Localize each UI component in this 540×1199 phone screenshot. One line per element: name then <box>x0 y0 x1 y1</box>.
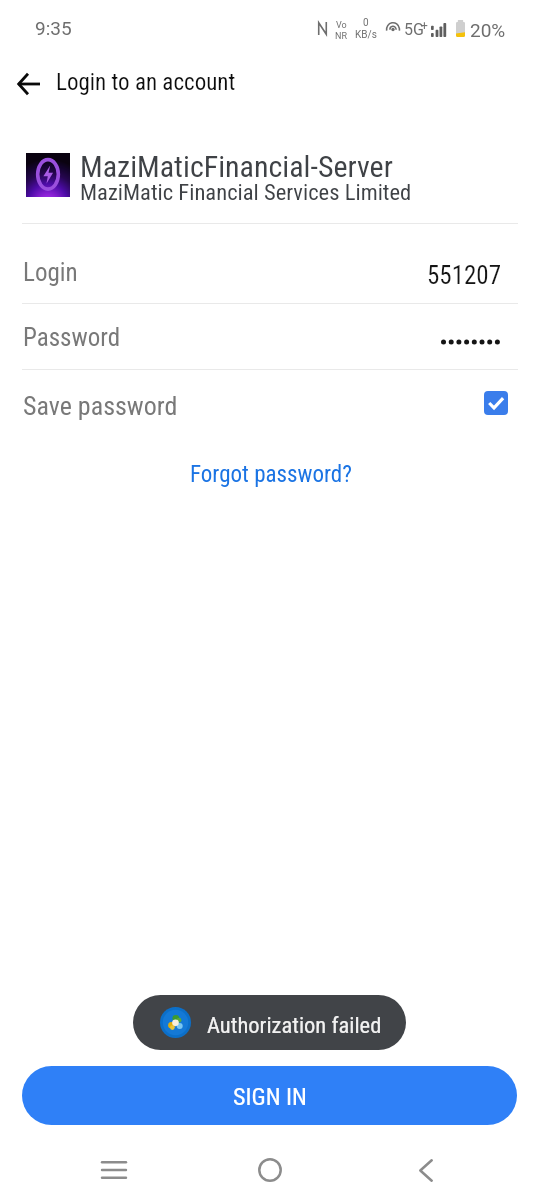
button[interactable]: Login <box>0 224 540 303</box>
button[interactable]: SIGN IN <box>22 1066 517 1125</box>
staticText: NR <box>335 31 347 42</box>
button[interactable]: Back <box>398 1142 454 1198</box>
staticText: 0 <box>363 17 369 29</box>
staticText: MaziMaticFinancial-Server <box>80 149 393 184</box>
staticText: 5G <box>404 20 424 39</box>
staticText: MaziMatic Financial Services Limited <box>80 179 412 205</box>
button[interactable]: Home <box>242 1142 298 1198</box>
button[interactable]: Forgot password? <box>176 454 366 495</box>
button[interactable]: Authorization failed <box>133 995 406 1050</box>
staticText: Login <box>23 258 78 287</box>
button[interactable]: Password <box>0 304 540 369</box>
staticText: Vo <box>336 20 347 31</box>
button[interactable]: Recent apps <box>86 1142 142 1198</box>
staticText: Save password <box>23 391 178 421</box>
staticText: 9:35 <box>35 17 72 39</box>
staticText: + <box>421 19 428 33</box>
staticText: Forgot password? <box>190 461 352 488</box>
staticText: SIGN IN <box>233 1083 307 1111</box>
staticText: 20% <box>470 19 506 41</box>
staticText: KB/s <box>355 29 377 41</box>
button[interactable]: Save password <box>0 370 540 436</box>
staticText: Login to an account <box>56 69 236 96</box>
staticText: Password <box>23 323 121 352</box>
button[interactable]: Back <box>6 62 50 106</box>
staticText: 551207 <box>427 261 502 290</box>
staticText: Authorization failed <box>207 1012 382 1038</box>
